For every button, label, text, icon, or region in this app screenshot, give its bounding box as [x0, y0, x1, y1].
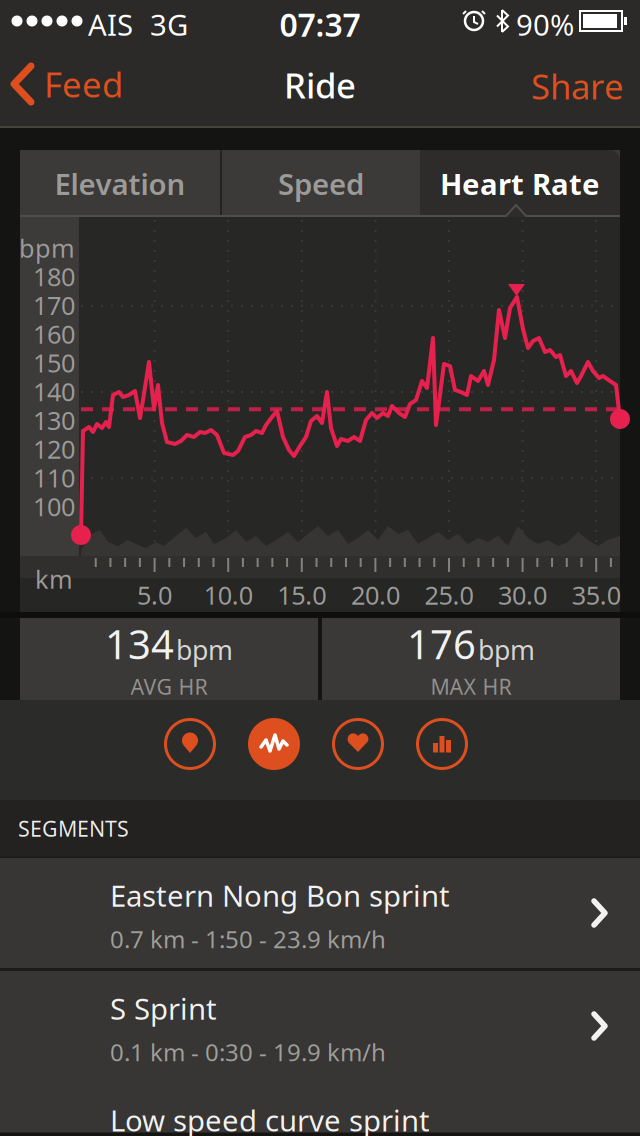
staticText: 120 — [33, 432, 75, 466]
staticText: Speed — [278, 164, 364, 203]
button[interactable]: Feed — [10, 61, 123, 107]
staticText: 30.0 — [498, 578, 547, 612]
button[interactable]: Low speed curve sprint — [0, 1084, 640, 1136]
staticText: 90% — [516, 5, 574, 44]
staticText: 100 — [33, 490, 75, 523]
staticText: 130 — [33, 403, 75, 437]
staticText: Ride — [284, 62, 356, 108]
staticText: SEGMENTS — [18, 814, 129, 843]
staticText: 20.0 — [351, 578, 400, 612]
button[interactable]: Eastern Nong Bon sprint — [0, 858, 640, 968]
staticText: 5.0 — [137, 578, 172, 612]
staticText: Heart Rate — [440, 164, 600, 203]
staticText: 07:37 — [279, 3, 360, 45]
staticText: 25.0 — [424, 578, 473, 612]
staticText: 110 — [33, 461, 75, 494]
button[interactable] — [333, 719, 383, 769]
staticText: 176 — [407, 617, 476, 670]
staticText: 150 — [33, 346, 75, 379]
staticText: MAX HR — [430, 672, 511, 701]
staticText: bpm — [176, 632, 233, 667]
staticText: 140 — [33, 375, 75, 408]
staticText: AIS — [88, 5, 133, 44]
staticText: 170 — [33, 288, 75, 322]
staticText: 180 — [33, 260, 75, 293]
staticText: 0.1 km - 0:30 - 19.9 km/h — [110, 1036, 386, 1068]
staticText: bpm — [19, 231, 75, 265]
button[interactable]: Heart Rate — [420, 150, 620, 217]
button[interactable]: Speed — [222, 150, 420, 217]
staticText: S Sprint — [110, 989, 217, 1028]
button[interactable]: S Sprint — [0, 971, 640, 1081]
button[interactable]: Share — [531, 63, 624, 109]
button[interactable] — [165, 719, 215, 769]
staticText: Elevation — [54, 164, 185, 203]
staticText: bpm — [478, 632, 535, 667]
staticText: 3G — [150, 5, 188, 44]
staticText: Eastern Nong Bon sprint — [110, 876, 450, 915]
staticText: Low speed curve sprint — [110, 1100, 430, 1136]
staticText: 15.0 — [277, 578, 326, 612]
button[interactable]: Elevation — [20, 150, 220, 217]
staticText: Feed — [44, 61, 123, 107]
staticText: 134 — [105, 617, 174, 670]
staticText: km — [35, 562, 73, 596]
staticText: 10.0 — [204, 578, 253, 612]
staticText: Share — [531, 63, 624, 109]
staticText: 0.7 km - 1:50 - 23.9 km/h — [110, 923, 386, 955]
button[interactable] — [417, 719, 467, 769]
staticText: 160 — [33, 317, 75, 351]
button[interactable] — [249, 719, 299, 769]
staticText: 35.0 — [572, 578, 621, 612]
staticText: AVG HR — [130, 672, 207, 701]
